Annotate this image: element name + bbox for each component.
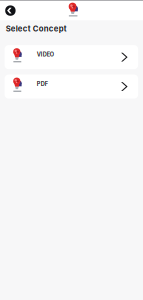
button[interactable]: VIDEO	[5, 45, 138, 69]
button[interactable]: Back	[5, 5, 16, 16]
staticText: PDF	[37, 81, 48, 87]
button[interactable]: PDF	[5, 75, 138, 99]
staticText: Select Concept	[6, 24, 67, 33]
staticText: VIDEO	[37, 51, 54, 58]
